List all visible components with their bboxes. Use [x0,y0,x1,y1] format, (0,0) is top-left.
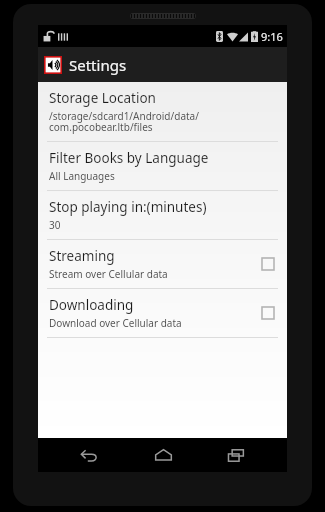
button[interactable]: Toggle Streaming [259,255,277,273]
staticText: Streaming [49,247,115,265]
staticText: Downloading [49,296,134,314]
staticText: Settings [69,55,127,75]
button[interactable]: Downloading [38,289,287,337]
button[interactable]: Recent apps [214,438,258,472]
staticText: Storage Location [49,89,156,107]
button[interactable]: Toggle Downloading [259,304,277,322]
staticText: 30 [49,218,61,232]
button[interactable]: Stop playing in:(minutes) [38,191,287,239]
button[interactable]: Home [141,438,185,472]
button[interactable]: Filter Books by Language [38,142,287,190]
staticText: Stream over Cellular data [49,267,168,281]
other: App icon [44,56,62,74]
staticText: 9:16 [261,29,283,44]
staticText: All Languages [49,169,115,183]
staticText: Filter Books by Language [49,149,209,167]
button[interactable]: Storage Location [38,82,287,141]
staticText: Stop playing in:(minutes) [49,198,207,216]
button[interactable]: Back [67,438,111,472]
staticText: /storage/sdcard1/Android/data/ com.pocob… [49,109,199,134]
staticText: Download over Cellular data [49,316,182,330]
button[interactable]: Streaming [38,240,287,288]
button[interactable]: App icon [38,47,287,82]
